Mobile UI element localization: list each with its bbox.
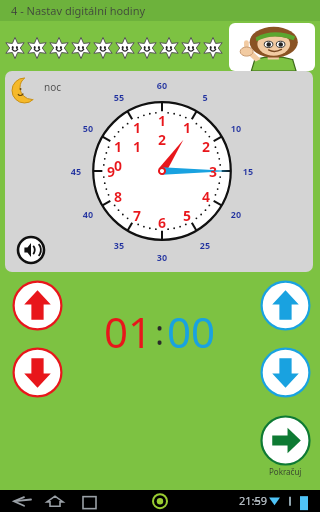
staticText: 60: [153, 79, 171, 91]
staticText: 55: [110, 91, 128, 103]
staticText: 35: [110, 239, 128, 251]
staticText: 11: [129, 118, 145, 156]
button[interactable]: Minutes down: [260, 347, 311, 398]
staticText: 4 - Nastav digitální hodiny: [11, 3, 146, 18]
staticText: 40: [79, 208, 97, 220]
staticText: 21:59: [239, 493, 268, 508]
button[interactable]: Hours down: [12, 347, 63, 398]
staticText: 00: [167, 303, 216, 360]
button[interactable]: Minutes up: [260, 280, 311, 331]
button[interactable]: Helper character: [229, 23, 315, 71]
staticText: 5: [179, 206, 195, 225]
staticText: 1: [179, 118, 195, 137]
staticText: 7: [129, 206, 145, 225]
staticText: 5: [196, 91, 214, 103]
staticText: 10: [227, 122, 245, 134]
staticText: Pokračuj: [269, 466, 302, 477]
staticText: 01: [104, 303, 153, 360]
button[interactable]: Play sound: [16, 235, 46, 265]
button[interactable]: Pokračuj: [260, 415, 311, 477]
staticText: 45: [67, 165, 85, 177]
staticText: 2: [198, 137, 214, 156]
staticText: noc: [44, 80, 62, 94]
staticText: 15: [239, 165, 257, 177]
staticText: 8: [110, 187, 126, 206]
button[interactable]: Hours up: [12, 280, 63, 331]
staticText: 12: [154, 111, 170, 149]
staticText: :: [155, 309, 165, 355]
staticText: 20: [227, 208, 245, 220]
staticText: 4: [198, 187, 214, 206]
staticText: 25: [196, 239, 214, 251]
staticText: 3: [205, 162, 221, 181]
staticText: 30: [153, 251, 171, 263]
staticText: 6: [154, 213, 170, 232]
staticText: 50: [79, 122, 97, 134]
staticText: 10: [110, 137, 126, 175]
staticText: 9: [103, 162, 119, 181]
